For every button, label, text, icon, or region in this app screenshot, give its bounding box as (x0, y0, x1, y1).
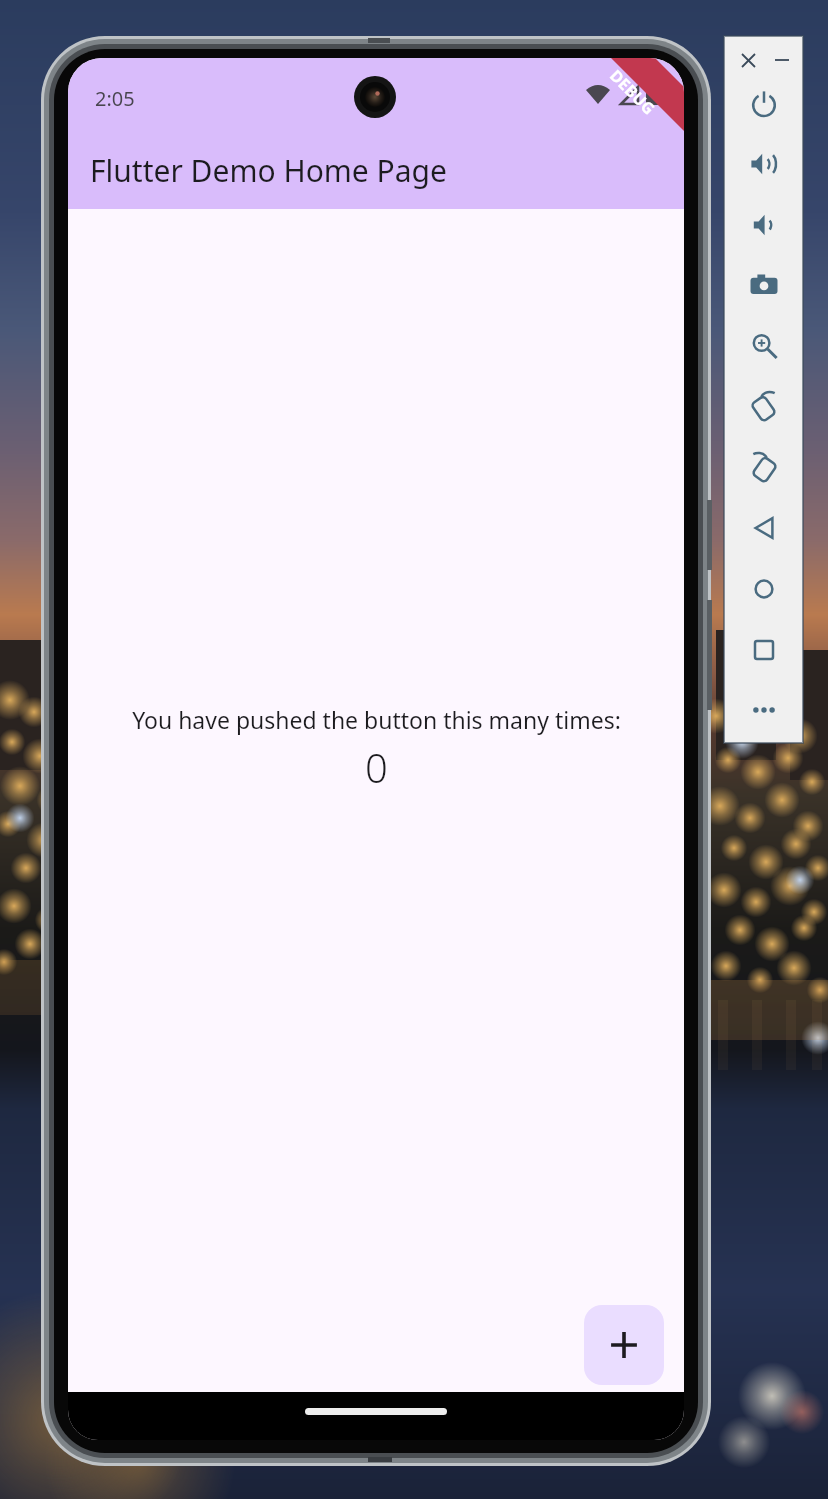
button[interactable]: Zoom (745, 327, 783, 365)
staticText: 2:05 (95, 85, 135, 112)
button[interactable]: Increment (584, 1305, 664, 1385)
button[interactable]: Home (745, 570, 783, 608)
button[interactable]: Take screenshot (745, 266, 783, 304)
button[interactable]: Back (745, 509, 783, 547)
button[interactable]: Volume up (745, 145, 783, 183)
button[interactable]: Overview (745, 631, 783, 669)
staticText: You have pushed the button this many tim… (132, 704, 621, 735)
button[interactable]: Rotate left (745, 388, 783, 426)
button[interactable]: Rotate right (745, 449, 783, 487)
staticText: DEBUG (605, 65, 660, 119)
button[interactable]: More (745, 691, 783, 729)
button[interactable]: Minimize (768, 46, 796, 74)
staticText: 0 (365, 740, 388, 794)
staticText: Flutter Demo Home Page (90, 150, 447, 191)
button[interactable]: Volume down (745, 206, 783, 244)
button[interactable]: Close (734, 46, 762, 74)
button[interactable]: Power (745, 85, 783, 123)
